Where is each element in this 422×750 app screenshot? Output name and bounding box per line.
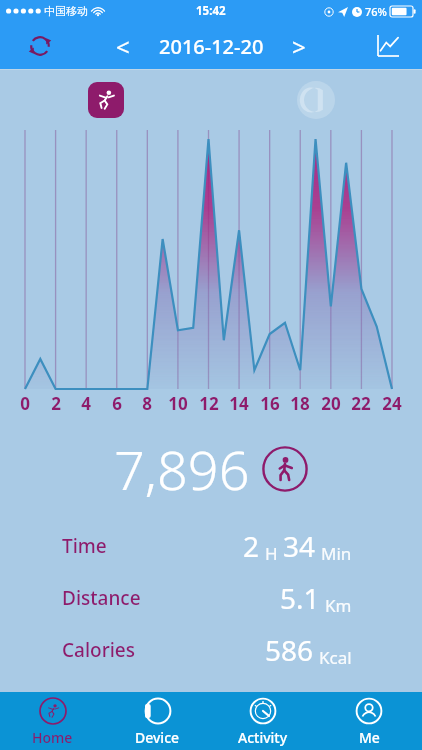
- button[interactable]: Refresh: [22, 28, 58, 64]
- staticText: 16: [260, 392, 280, 415]
- staticText: 34: [283, 527, 316, 565]
- staticText: 15:42: [196, 3, 226, 19]
- staticText: 2016-12-20: [159, 33, 264, 60]
- button[interactable]: Time: [0, 520, 422, 572]
- button[interactable]: Steps: [262, 446, 308, 492]
- staticText: 7,896: [114, 432, 250, 506]
- button[interactable]: Distance: [0, 572, 422, 624]
- button[interactable]: Home: [0, 692, 105, 750]
- staticText: Km: [325, 594, 352, 617]
- button[interactable]: Me: [316, 692, 422, 750]
- staticText: 8: [142, 392, 152, 415]
- staticText: 24: [382, 392, 402, 415]
- staticText: >: [292, 30, 306, 63]
- staticText: 22: [351, 392, 371, 415]
- staticText: Distance: [62, 585, 141, 611]
- button[interactable]: Calories: [0, 624, 422, 676]
- staticText: 14: [229, 392, 249, 415]
- staticText: 76%: [365, 4, 387, 19]
- staticText: 12: [199, 392, 219, 415]
- staticText: <: [116, 30, 130, 63]
- button[interactable]: Device: [105, 692, 210, 750]
- staticText: 586: [265, 631, 314, 669]
- staticText: 18: [290, 392, 310, 415]
- button[interactable]: Statistics chart: [370, 28, 406, 64]
- button[interactable]: Activity: [210, 692, 316, 750]
- staticText: 中国移动: [44, 4, 88, 18]
- staticText: H: [265, 542, 278, 565]
- staticText: 4: [81, 392, 91, 415]
- staticText: Time: [62, 533, 107, 559]
- staticText: 6: [112, 392, 122, 415]
- button[interactable]: 2016-12-20: [143, 33, 279, 60]
- staticText: 20: [321, 392, 341, 415]
- button[interactable]: Step mode: [88, 82, 124, 118]
- staticText: Home: [32, 728, 73, 747]
- staticText: 0: [20, 392, 30, 415]
- staticText: 5.1: [280, 579, 320, 617]
- staticText: 2: [51, 392, 61, 415]
- button[interactable]: Next day: [279, 28, 319, 64]
- staticText: Activity: [238, 728, 288, 747]
- staticText: Min: [321, 542, 352, 565]
- staticText: Calories: [62, 637, 135, 663]
- button[interactable]: Sleep mode: [297, 81, 335, 119]
- staticText: Kcal: [319, 646, 352, 669]
- staticText: 2: [243, 527, 260, 565]
- staticText: Me: [359, 728, 380, 747]
- staticText: Device: [135, 728, 180, 747]
- button[interactable]: Previous day: [103, 28, 143, 64]
- staticText: 10: [168, 392, 188, 415]
